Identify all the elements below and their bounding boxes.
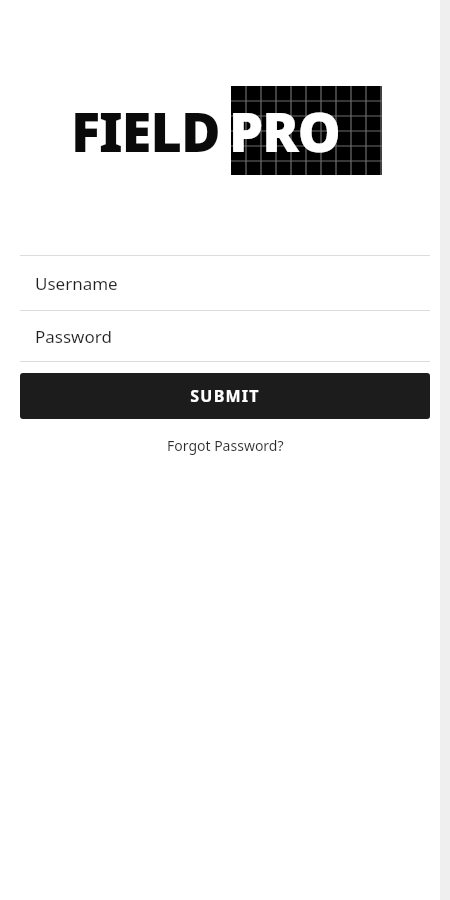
button[interactable]: Password bbox=[20, 311, 430, 361]
staticText: Forgot Password? bbox=[167, 436, 284, 455]
staticText: SUBMIT bbox=[190, 385, 260, 407]
button[interactable]: Username bbox=[20, 256, 430, 310]
staticText: Username bbox=[35, 272, 118, 295]
staticText: FIELD bbox=[71, 94, 220, 168]
button[interactable]: Forgot Password? bbox=[159, 433, 292, 458]
staticText: Password bbox=[35, 325, 112, 348]
button[interactable]: SUBMIT bbox=[20, 373, 430, 419]
staticText: PRO bbox=[229, 94, 340, 168]
